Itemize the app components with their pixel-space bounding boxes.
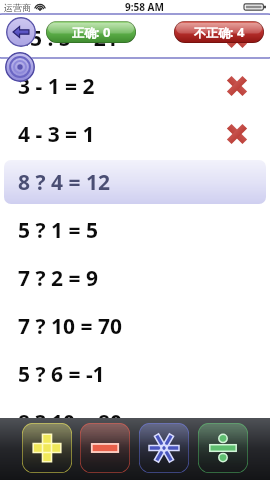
staticText: 运营商	[4, 2, 31, 13]
button[interactable]: Add	[22, 423, 72, 473]
button[interactable]: 5 ? 6 = -1	[4, 352, 266, 396]
staticText: 8 ? 10 = 80	[18, 408, 122, 437]
staticText: 8 ? 4 = 12	[18, 168, 110, 197]
staticText: 4 - 3 = 1	[18, 120, 95, 149]
button[interactable]: 正确:	[46, 21, 136, 43]
button[interactable]: 不正确:	[174, 21, 264, 43]
button[interactable]: 7 ? 10 = 70	[4, 304, 266, 348]
staticText: 正确:	[72, 24, 100, 40]
button[interactable]: 8 ? 10 = 80	[4, 400, 266, 444]
staticText: 45 : 5 = 21	[18, 24, 118, 53]
button[interactable]: Subtract	[80, 423, 130, 473]
staticText: 不正确:	[194, 24, 234, 40]
button[interactable]: Divide	[198, 423, 248, 473]
button[interactable]: Reload	[5, 52, 35, 82]
staticText: 9:58 AM	[125, 0, 164, 14]
staticText: 4	[237, 23, 245, 41]
button[interactable]: Multiply	[139, 423, 189, 473]
staticText: 7 ? 10 = 70	[18, 312, 122, 341]
button[interactable]: Back	[6, 17, 36, 47]
button[interactable]: 7 ? 2 = 9	[4, 256, 266, 300]
staticText: 0	[103, 23, 111, 41]
button[interactable]: 3 - 1 = 2	[4, 64, 266, 108]
staticText: 5 ? 6 = -1	[18, 360, 105, 389]
staticText: 3 - 1 = 2	[18, 72, 95, 101]
button[interactable]: 8 ? 4 = 12	[4, 160, 266, 204]
button[interactable]: 4 - 3 = 1	[4, 112, 266, 156]
staticText: 7 ? 2 = 9	[18, 264, 98, 293]
staticText: 5 ? 1 = 5	[18, 216, 98, 245]
button[interactable]: 5 ? 1 = 5	[4, 208, 266, 252]
button[interactable]: 45 : 5 = 21	[4, 16, 266, 60]
